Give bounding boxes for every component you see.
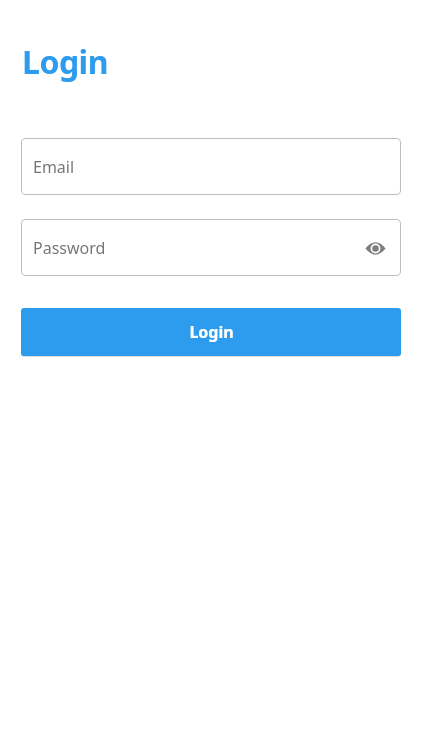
- button[interactable]: Email: [21, 138, 401, 195]
- button[interactable]: Password: [21, 219, 401, 276]
- button[interactable]: Login: [21, 308, 401, 356]
- button[interactable]: Show password: [361, 234, 389, 262]
- staticText: Email: [33, 156, 75, 178]
- staticText: Login: [189, 321, 234, 343]
- staticText: Login: [22, 40, 108, 84]
- staticText: Password: [33, 237, 106, 259]
